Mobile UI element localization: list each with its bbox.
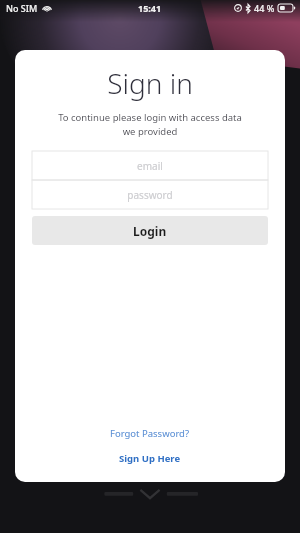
button[interactable]: email	[32, 151, 268, 180]
staticText: 44 %	[254, 2, 275, 14]
button[interactable]: Login	[32, 216, 268, 245]
staticText: Forgot Password?	[110, 427, 190, 440]
staticText: password	[127, 188, 173, 202]
staticText: Sign in	[107, 64, 193, 102]
staticText: Sign Up Here	[119, 452, 181, 465]
staticText: Login	[133, 223, 167, 239]
button[interactable]: password	[32, 180, 268, 209]
button[interactable]: Sign Up Here	[109, 449, 191, 468]
staticText: To continue please login with access dat…	[58, 111, 242, 138]
staticText: 15:41	[138, 2, 162, 14]
staticText: No SIM	[6, 2, 38, 14]
button[interactable]: Forgot Password?	[100, 424, 200, 443]
staticText: email	[137, 159, 163, 173]
